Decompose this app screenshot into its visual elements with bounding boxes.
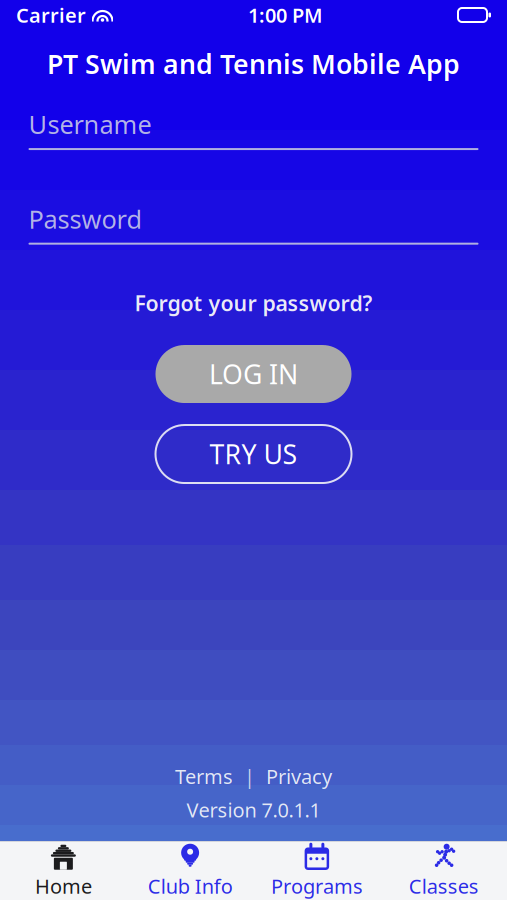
button[interactable]: TRY US (155, 425, 351, 483)
button[interactable]: Classes (380, 842, 507, 900)
button[interactable]: Club Info (127, 842, 254, 900)
staticText: LOG IN (209, 356, 298, 392)
staticText: Classes (409, 873, 479, 899)
staticText: Club Info (148, 873, 233, 899)
staticText: 1:00 PM (248, 2, 323, 28)
button[interactable]: Home (0, 842, 127, 900)
button[interactable]: Privacy (266, 763, 332, 789)
staticText: | (244, 763, 255, 789)
staticText: Username (28, 107, 151, 141)
staticText: PT Swim and Tennis Mobile App (47, 46, 460, 81)
staticText: Home (35, 873, 92, 899)
staticText: Programs (271, 873, 363, 899)
button[interactable]: LOG IN (155, 345, 351, 403)
button[interactable]: Terms (175, 763, 233, 789)
staticText: Carrier (16, 2, 86, 28)
staticText: Privacy (266, 763, 332, 789)
staticText: Forgot your password? (134, 289, 372, 317)
staticText: Terms (175, 763, 233, 789)
button[interactable]: Forgot your password? (122, 283, 384, 323)
button[interactable]: Programs (253, 842, 380, 900)
staticText: Version 7.0.1.1 (186, 796, 320, 823)
staticText: TRY US (209, 436, 297, 472)
staticText: Password (28, 202, 142, 236)
